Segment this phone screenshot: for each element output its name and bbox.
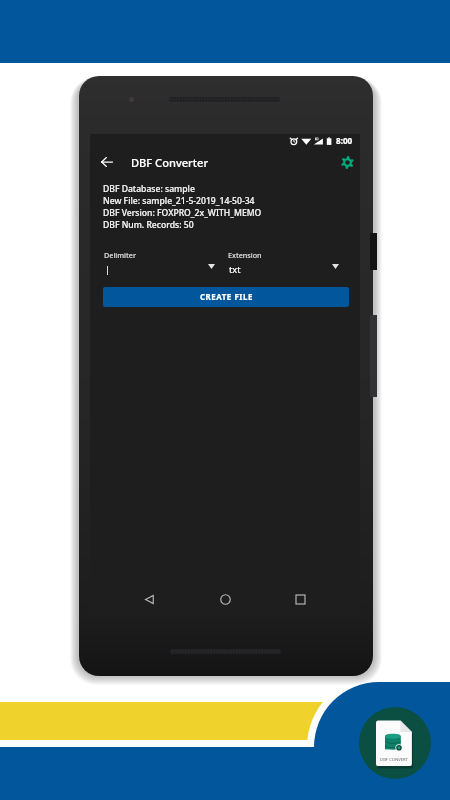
button[interactable]: Back xyxy=(133,584,165,615)
button[interactable]: Delimiter xyxy=(104,244,214,272)
staticText: CREATE FILE xyxy=(200,292,253,303)
button[interactable]: Settings xyxy=(335,150,359,174)
button[interactable]: Extension xyxy=(228,244,338,272)
staticText: 8:00 xyxy=(336,135,353,146)
staticText: | xyxy=(105,263,111,276)
staticText: Delimiter xyxy=(104,250,136,260)
staticText: DBF Num. Records: 50 xyxy=(103,219,194,231)
button[interactable]: CREATE FILE xyxy=(103,287,349,307)
button[interactable]: Recent apps xyxy=(284,584,316,615)
button[interactable]: Back xyxy=(95,150,119,174)
button[interactable]: DBF Convert app icon xyxy=(359,707,431,779)
staticText: DBF Version: FOXPRO_2x_WITH_MEMO xyxy=(103,207,262,219)
staticText: New File: sample_21-5-2019_14-50-34 xyxy=(103,195,255,207)
staticText: Extension xyxy=(228,250,262,260)
staticText: txt xyxy=(229,263,241,276)
staticText: DBF CONVERT xyxy=(376,757,412,763)
staticText: DBF Database: sample xyxy=(103,183,195,195)
button[interactable]: Home xyxy=(209,584,241,615)
staticText: DBF Converter xyxy=(131,155,209,170)
